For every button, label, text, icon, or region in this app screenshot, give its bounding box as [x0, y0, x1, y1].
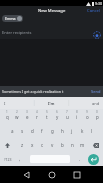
staticText: 1: [6, 110, 8, 114]
button[interactable]: h: [57, 124, 67, 138]
button[interactable]: f: [37, 124, 47, 138]
staticText: f: [41, 128, 43, 134]
button[interactable]: [88, 154, 99, 165]
button[interactable]: v: [47, 138, 57, 152]
staticText: j: [71, 128, 73, 134]
staticText: m: [80, 142, 85, 148]
button[interactable]: u: [62, 109, 72, 124]
button[interactable]: [46, 169, 58, 181]
staticText: d: [31, 128, 34, 134]
staticText: u: [66, 114, 69, 120]
button[interactable]: b: [57, 138, 67, 152]
button[interactable]: Emma: [5, 15, 22, 22]
button[interactable]: y: [52, 109, 62, 124]
staticText: 6: [56, 110, 58, 114]
button[interactable]: m: [77, 138, 87, 152]
staticText: 2: [16, 110, 18, 114]
staticText: s: [21, 128, 24, 134]
staticText: q: [6, 114, 9, 120]
staticText: Enter recipients: [2, 30, 32, 35]
button[interactable]: a: [7, 124, 17, 138]
button[interactable]: l: [87, 124, 97, 138]
staticText: v: [51, 142, 54, 148]
staticText: g: [51, 128, 54, 134]
button[interactable]: o: [82, 109, 92, 124]
button[interactable]: j: [67, 124, 77, 138]
staticText: x: [31, 142, 34, 148]
button[interactable]: Send: [91, 89, 101, 94]
button[interactable]: t: [42, 109, 52, 124]
staticText: i: [76, 114, 78, 120]
button[interactable]: ?123: [0, 152, 15, 166]
staticText: h: [61, 128, 64, 134]
button[interactable]: w: [12, 109, 22, 124]
button[interactable]: s: [17, 124, 27, 138]
button[interactable]: and: [92, 101, 100, 106]
staticText: w: [15, 114, 19, 120]
staticText: 9:30: [95, 1, 102, 6]
button[interactable]: [20, 169, 32, 181]
staticText: p: [96, 114, 99, 120]
button[interactable]: c: [37, 138, 47, 152]
staticText: 0: [96, 110, 98, 114]
button[interactable]: [71, 169, 83, 181]
button[interactable]: I: [4, 101, 6, 106]
staticText: Emma: [5, 16, 16, 21]
button[interactable]: [0, 138, 15, 152]
staticText: Sometimes I get a quick realization t: [2, 89, 91, 94]
button[interactable]: .: [75, 152, 85, 166]
staticText: 8: [76, 110, 78, 114]
button[interactable]: [93, 31, 101, 39]
button[interactable]: Cancel: [87, 8, 101, 14]
button[interactable]: ,: [15, 152, 25, 166]
staticText: a: [11, 128, 14, 134]
staticText: 5: [46, 110, 48, 114]
button[interactable]: r: [32, 109, 42, 124]
staticText: e: [26, 114, 29, 120]
button[interactable]: q: [2, 109, 12, 124]
button[interactable]: k: [77, 124, 87, 138]
staticText: y: [56, 114, 59, 120]
button[interactable]: I'm: [48, 101, 55, 106]
staticText: ?123: [4, 157, 12, 162]
staticText: o: [86, 114, 89, 120]
button[interactable]: n: [67, 138, 77, 152]
staticText: 7: [66, 110, 68, 114]
staticText: Cancel: [87, 8, 101, 14]
staticText: 9: [86, 110, 88, 114]
button[interactable]: e: [22, 109, 32, 124]
staticText: .: [79, 156, 81, 162]
staticText: 3: [26, 110, 28, 114]
staticText: ,: [19, 156, 21, 162]
staticText: New Message: [38, 8, 66, 14]
staticText: l: [91, 128, 93, 134]
button[interactable]: i: [72, 109, 82, 124]
button[interactable]: z: [17, 138, 27, 152]
button[interactable]: d: [27, 124, 37, 138]
staticText: z: [21, 142, 24, 148]
staticText: 4: [36, 110, 38, 114]
button[interactable]: x: [27, 138, 37, 152]
staticText: t: [46, 114, 48, 120]
staticText: Send: [91, 89, 101, 94]
staticText: c: [41, 142, 44, 148]
button[interactable]: g: [47, 124, 57, 138]
staticText: k: [81, 128, 84, 134]
button[interactable]: [88, 138, 103, 152]
staticText: b: [61, 142, 64, 148]
staticText: n: [71, 142, 74, 148]
button[interactable]: p: [92, 109, 102, 124]
staticText: r: [36, 114, 38, 120]
